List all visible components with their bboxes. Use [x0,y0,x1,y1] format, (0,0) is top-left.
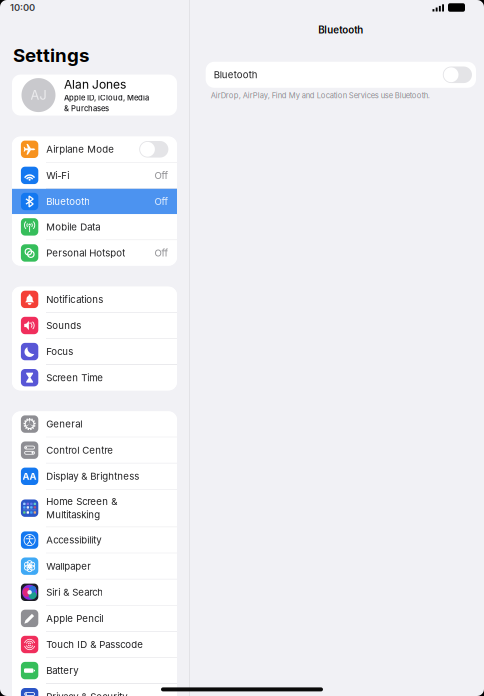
button[interactable]: Wallpaper [12,553,177,579]
staticText: Apple Pencil [46,613,103,624]
staticText: Wi-Fi [46,170,69,181]
button[interactable]: Battery [12,658,177,683]
button[interactable]: Apple Pencil [12,606,177,631]
staticText: Off [154,247,168,259]
staticText: Apple ID, iCloud, Media [64,93,149,102]
staticText: AA [23,471,37,482]
button[interactable]: Bluetooth [206,62,476,88]
button[interactable]: Airplane Mode [12,137,177,162]
button[interactable]: Sounds [12,313,177,338]
button[interactable]: Accessibility [12,527,177,553]
staticText: 10:00 [10,2,35,13]
staticText: Off [154,196,168,207]
staticText: Display & Brightness [46,470,139,482]
button[interactable]: Wi-Fi [12,163,177,188]
staticText: Mobile Data [46,221,100,233]
staticText: Touch ID & Passcode [46,639,143,650]
button[interactable]: Touch ID & Passcode [12,632,177,657]
staticText: Off [154,170,168,181]
staticText: Notifications [46,294,103,305]
staticText: Personal Hotspot [46,247,125,259]
staticText: Settings [13,44,89,67]
staticText: AJ [30,87,46,103]
button[interactable]: Siri & Search [12,580,177,605]
staticText: Airplane Mode [46,143,114,155]
button[interactable]: Mobile Data [12,214,177,240]
button[interactable]: Personal Hotspot [12,240,177,266]
staticText: Bluetooth [46,196,90,207]
staticText: Alan Jones [64,77,126,92]
staticText: Multitasking [46,509,100,520]
staticText: Bluetooth [214,69,258,81]
staticText: General [46,418,82,430]
button[interactable]: Notifications [12,287,177,312]
staticText: Bluetooth [318,24,363,36]
button[interactable]: AA [12,464,177,489]
staticText: Siri & Search [46,586,103,598]
button[interactable]: General [12,411,177,437]
staticText: Control Centre [46,444,113,456]
staticText: Screen Time [46,372,103,383]
staticText: Battery [46,665,78,676]
staticText: Sounds [46,320,81,331]
button[interactable]: Privacy & Security [12,684,177,696]
staticText: Privacy & Security [46,691,127,696]
button[interactable]: Home Screen & [12,490,177,527]
staticText: Accessibility [46,534,101,546]
staticText: Focus [46,346,73,357]
staticText: Home Screen & [46,496,117,507]
button[interactable]: AJ [12,75,177,116]
button[interactable]: Focus [12,339,177,364]
staticText: Wallpaper [46,560,91,572]
button[interactable]: Bluetooth [12,189,177,214]
button[interactable]: Screen Time [12,365,177,390]
button[interactable]: Control Centre [12,437,177,463]
staticText: AirDrop, AirPlay, Find My and Location S… [211,91,430,100]
staticText: & Purchases [64,104,109,113]
